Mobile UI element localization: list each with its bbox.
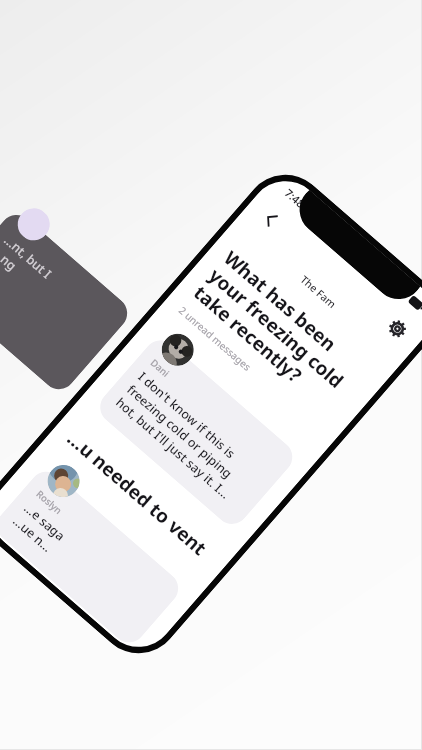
button[interactable]: Back: [249, 197, 292, 240]
staticText: The Fam: [231, 214, 406, 369]
staticText: What has been your freezing cold take re…: [188, 245, 376, 421]
button[interactable]: Dani: [93, 333, 299, 531]
staticText: 2 unread messages: [176, 303, 254, 374]
staticText: …nt, but I …ng …: [0, 232, 55, 308]
staticText: I don't know if this is freezing cold or…: [112, 368, 266, 512]
button[interactable]: …nt, but I …ng …: [0, 208, 134, 396]
staticText: 7:48: [282, 185, 308, 211]
staticText: Roslyn: [33, 488, 65, 517]
staticText: …e saga …ue n…: [9, 500, 69, 557]
staticText: Dani: [148, 356, 172, 380]
button[interactable]: Roslyn: [0, 465, 185, 649]
button[interactable]: Settings: [376, 308, 419, 350]
staticText: …u needed to vent: [62, 425, 212, 561]
